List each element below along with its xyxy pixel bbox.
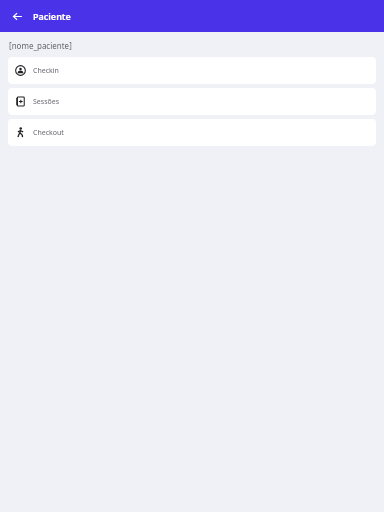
staticText: Sessões	[33, 97, 60, 107]
staticText: Checkin	[33, 66, 59, 76]
button[interactable]: Checkin	[8, 57, 376, 84]
staticText: Checkout	[33, 128, 64, 138]
button[interactable]: Sessões	[8, 88, 376, 115]
button[interactable]: Back	[8, 7, 26, 25]
staticText: [nome_paciente]	[9, 40, 72, 51]
staticText: Paciente	[33, 10, 71, 22]
button[interactable]: Checkout	[8, 119, 376, 146]
